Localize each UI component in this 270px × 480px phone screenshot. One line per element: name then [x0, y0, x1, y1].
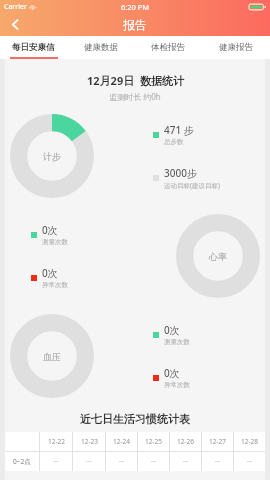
staticText: 12月29日 — [87, 73, 135, 88]
staticText: ··· — [151, 457, 157, 467]
staticText: 0次 — [42, 223, 58, 237]
staticText: 数据统计 — [140, 74, 184, 88]
staticText: 监测时长 约0h — [5, 91, 265, 102]
staticText: 3000步 — [164, 166, 197, 180]
button[interactable]: 健康数据 — [67, 36, 134, 59]
staticText: 12-27 — [209, 437, 226, 446]
staticText: 471 步 — [164, 123, 194, 137]
staticText: 0次 — [42, 266, 58, 280]
staticText: 健康数据 — [84, 42, 118, 53]
staticText: 近七日生活习惯统计表 — [5, 412, 265, 426]
button[interactable]: 每日安康信 — [0, 36, 67, 59]
staticText: ··· — [53, 457, 59, 467]
button[interactable]: 计步 — [10, 114, 94, 198]
staticText: Carrier — [4, 2, 27, 12]
staticText: 异常次数 — [164, 381, 190, 389]
staticText: 测量次数 — [42, 238, 68, 246]
button[interactable]: 血压 — [10, 314, 94, 398]
staticText: 每日安康信 — [12, 42, 55, 53]
staticText: 12-24 — [113, 437, 130, 446]
staticText: 测量次数 — [164, 338, 190, 346]
staticText: 总步数 — [164, 138, 184, 146]
staticText: 血压 — [43, 351, 61, 362]
staticText: 健康报告 — [219, 42, 253, 53]
staticText: 体检报告 — [151, 42, 185, 53]
button[interactable]: 心率 — [176, 214, 260, 298]
staticText: ··· — [247, 457, 253, 467]
staticText: ··· — [215, 457, 221, 467]
staticText: 12-23 — [81, 437, 98, 446]
staticText: 心率 — [209, 251, 227, 262]
staticText: 12-22 — [48, 437, 65, 446]
staticText: 12-28 — [241, 437, 258, 446]
staticText: ··· — [86, 457, 92, 467]
staticText: 12-25 — [145, 437, 162, 446]
staticText: 0次 — [164, 366, 180, 380]
staticText: 运动目标(建议目标) — [164, 181, 220, 190]
staticText: ··· — [183, 457, 189, 467]
staticText: 计步 — [43, 151, 61, 162]
staticText: 异常次数 — [42, 281, 68, 289]
staticText: 0次 — [164, 323, 180, 337]
staticText: 6:20 PM — [121, 2, 150, 12]
button[interactable]: 健康报告 — [202, 36, 270, 59]
staticText: 12-26 — [177, 437, 194, 446]
staticText: 报告 — [123, 17, 147, 32]
staticText: ··· — [119, 457, 125, 467]
staticText: 0~2点 — [13, 457, 31, 466]
button[interactable]: Back — [0, 13, 30, 36]
button[interactable]: 体检报告 — [134, 36, 202, 59]
